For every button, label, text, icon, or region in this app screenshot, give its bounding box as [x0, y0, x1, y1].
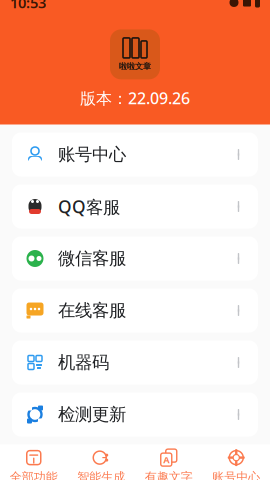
staticText: 在线客服 — [58, 300, 126, 321]
button[interactable]: 全部功能 — [0, 446, 67, 480]
staticText: 微信客服 — [58, 248, 126, 269]
staticText: 版本：22.09.26 — [80, 87, 190, 109]
staticText: 账号中心 — [58, 144, 126, 165]
staticText: 10:53 — [10, 0, 46, 12]
button[interactable]: 在线客服 — [12, 288, 258, 332]
staticText: QQ客服 — [58, 195, 120, 218]
staticText: 机器码 — [58, 352, 109, 373]
button[interactable]: QQ客服 — [12, 184, 258, 228]
staticText: 啦啦文章 — [119, 61, 151, 71]
button[interactable]: 微信客服 — [12, 236, 258, 280]
staticText: A — [163, 453, 169, 466]
button[interactable]: A — [135, 446, 202, 480]
staticText: 全部功能 — [10, 470, 58, 480]
staticText: 有趣文字 — [145, 470, 193, 480]
button[interactable]: 机器码 — [12, 340, 258, 384]
staticText: 账号中心 — [212, 470, 260, 480]
button[interactable]: 账号中心 — [12, 132, 258, 176]
button[interactable]: 智能生成 — [67, 446, 135, 480]
staticText: 智能生成 — [77, 470, 125, 480]
button[interactable]: 账号中心 — [202, 446, 270, 480]
staticText: 检测更新 — [58, 404, 126, 425]
button[interactable]: 检测更新 — [12, 392, 258, 436]
